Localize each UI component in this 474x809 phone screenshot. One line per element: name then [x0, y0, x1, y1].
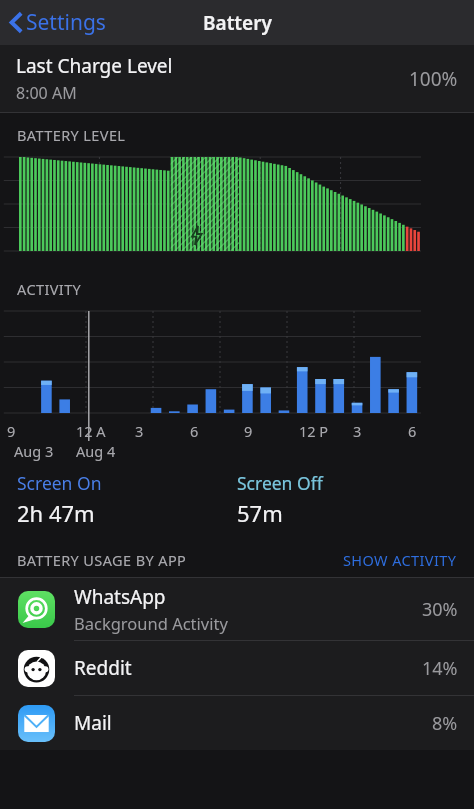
- staticText: 14%: [422, 656, 458, 681]
- staticText: SHOW ACTIVITY: [343, 550, 457, 570]
- staticText: 2h 47m: [17, 498, 95, 528]
- staticText: WhatsApp: [74, 584, 166, 610]
- staticText: 6: [408, 421, 417, 441]
- staticText: Settings: [26, 8, 106, 37]
- button[interactable]: Mail: [0, 696, 474, 750]
- staticText: 3: [135, 421, 144, 441]
- staticText: Reddit: [74, 655, 132, 681]
- staticText: 3: [353, 421, 362, 441]
- button[interactable]: SHOW ACTIVITY: [343, 550, 457, 570]
- staticText: 12 P: [299, 421, 329, 441]
- button[interactable]: Reddit: [0, 641, 474, 695]
- staticText: 8%: [432, 711, 458, 736]
- staticText: 9: [244, 421, 253, 441]
- staticText: 12 A: [76, 421, 106, 441]
- staticText: 9: [7, 421, 16, 441]
- staticText: 8:00 AM: [16, 82, 77, 104]
- staticText: BATTERY USAGE BY APP: [17, 550, 187, 570]
- staticText: Screen On: [17, 471, 102, 495]
- button[interactable]: WhatsApp: [0, 578, 474, 640]
- staticText: 100%: [409, 66, 458, 92]
- staticText: Mail: [74, 710, 112, 736]
- staticText: 57m: [237, 498, 283, 528]
- button[interactable]: Settings: [0, 2, 116, 43]
- staticText: 30%: [422, 597, 458, 622]
- staticText: Background Activity: [74, 612, 228, 634]
- staticText: 6: [190, 421, 199, 441]
- button[interactable]: Last Charge Level: [0, 45, 474, 113]
- staticText: Last Charge Level: [16, 53, 173, 79]
- staticText: ACTIVITY: [17, 279, 82, 299]
- staticText: Screen Off: [237, 471, 323, 495]
- staticText: Aug 3: [14, 441, 54, 461]
- staticText: BATTERY LEVEL: [17, 125, 126, 145]
- staticText: Aug 4: [76, 441, 116, 461]
- staticText: Battery: [203, 10, 272, 36]
